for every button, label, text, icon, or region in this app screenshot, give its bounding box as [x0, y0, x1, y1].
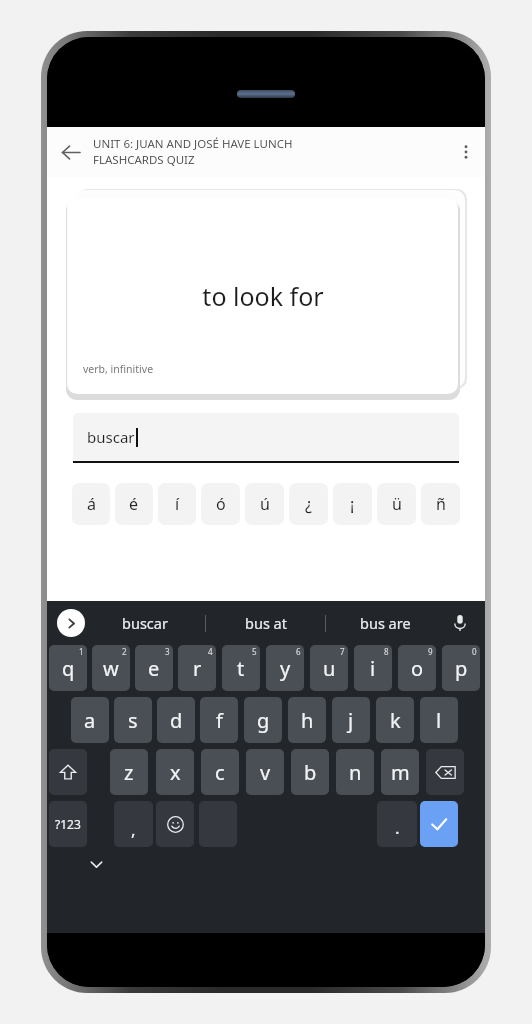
staticText: k [390, 707, 401, 734]
staticText: q [62, 655, 75, 682]
button[interactable]: j [332, 697, 370, 743]
staticText: i [370, 655, 376, 682]
staticText: r [193, 655, 202, 682]
staticText: y [280, 655, 291, 682]
staticText: f [216, 707, 223, 734]
button[interactable]: e [135, 645, 173, 691]
button[interactable]: r [178, 645, 216, 691]
button[interactable]: k [376, 697, 414, 743]
button[interactable]: c [201, 749, 239, 795]
button[interactable]: ¿ [289, 483, 328, 525]
staticText: UNIT 6: JUAN AND JOSÉ HAVE LUNCH [93, 136, 293, 152]
button[interactable]: f [200, 697, 238, 743]
staticText: l [436, 707, 442, 734]
button[interactable]: bus at [206, 601, 325, 645]
button[interactable]: x [156, 749, 194, 795]
button[interactable]: g [244, 697, 282, 743]
staticText: t [237, 655, 245, 682]
button[interactable]: , [114, 801, 153, 847]
staticText: p [455, 655, 468, 682]
button[interactable]: a [71, 697, 109, 743]
staticText: n [349, 759, 362, 786]
button[interactable] [426, 749, 464, 795]
button[interactable] [49, 749, 87, 795]
button[interactable]: ñ [421, 483, 460, 525]
staticText: FLASHCARDS QUIZ [93, 152, 195, 168]
button[interactable]: t [222, 645, 260, 691]
button[interactable]: d [157, 697, 195, 743]
button[interactable]: ó [201, 483, 240, 525]
staticText: 3 [165, 646, 170, 657]
staticText: é [129, 493, 139, 515]
button[interactable]: ú [245, 483, 284, 525]
staticText: 1 [79, 646, 84, 657]
button[interactable]: . [377, 801, 417, 847]
staticText: bus are [360, 613, 411, 633]
button[interactable]: ?123 [49, 801, 87, 847]
staticText: ü [392, 493, 402, 515]
button[interactable]: ü [377, 483, 416, 525]
button[interactable]: Hide keyboard [83, 851, 109, 877]
staticText: j [348, 707, 354, 734]
button[interactable]: s [114, 697, 152, 743]
staticText: e [148, 655, 160, 682]
button[interactable]: b [291, 749, 329, 795]
staticText: 4 [208, 646, 213, 657]
button[interactable] [156, 801, 194, 847]
staticText: ñ [436, 493, 446, 515]
staticText: to look for [202, 279, 324, 313]
button[interactable]: z [110, 749, 148, 795]
button[interactable]: Voice input [445, 601, 475, 645]
staticText: o [411, 655, 424, 682]
button[interactable]: m [381, 749, 419, 795]
staticText: x [170, 759, 181, 786]
button[interactable]: bus are [326, 601, 445, 645]
staticText: , [131, 818, 136, 841]
staticText: h [301, 707, 314, 734]
staticText: 5 [252, 646, 257, 657]
staticText: a [84, 707, 96, 734]
staticText: ?123 [55, 816, 81, 832]
staticText: 7 [340, 646, 345, 657]
button[interactable]: h [288, 697, 326, 743]
button[interactable]: y [266, 645, 304, 691]
button[interactable]: q [49, 645, 87, 691]
button[interactable]: buscar [73, 413, 459, 461]
button[interactable]: Back [47, 127, 93, 177]
button[interactable]: w [92, 645, 130, 691]
button[interactable]: l [420, 697, 458, 743]
staticText: m [391, 759, 410, 786]
staticText: d [170, 707, 183, 734]
button[interactable]: i [354, 645, 392, 691]
staticText: w [103, 655, 119, 682]
staticText: 9 [428, 646, 433, 657]
button[interactable]: n [336, 749, 374, 795]
staticText: ¡ [350, 493, 355, 515]
staticText: u [323, 655, 336, 682]
button[interactable] [420, 801, 458, 847]
button[interactable]: o [398, 645, 436, 691]
button[interactable]: ¡ [333, 483, 372, 525]
staticText: buscar [122, 613, 168, 633]
staticText: ú [260, 493, 270, 515]
staticText: bus at [245, 613, 287, 633]
staticText: ¿ [305, 493, 312, 515]
button[interactable]: í [158, 483, 196, 525]
button[interactable]: u [310, 645, 348, 691]
button[interactable]: More options [447, 127, 485, 177]
staticText: 6 [296, 646, 301, 657]
staticText: g [257, 707, 270, 734]
button[interactable]: Expand toolbar [57, 609, 85, 637]
staticText: 2 [122, 646, 127, 657]
button[interactable]: á [72, 483, 110, 525]
staticText: ó [216, 493, 226, 515]
button[interactable]: v [246, 749, 284, 795]
staticText: b [304, 759, 317, 786]
button[interactable]: to look for [67, 198, 458, 394]
button[interactable]: p [442, 645, 480, 691]
button[interactable]: é [115, 483, 153, 525]
staticText: z [124, 759, 134, 786]
staticText: buscar [87, 427, 135, 447]
button[interactable]: buscar [85, 601, 205, 645]
